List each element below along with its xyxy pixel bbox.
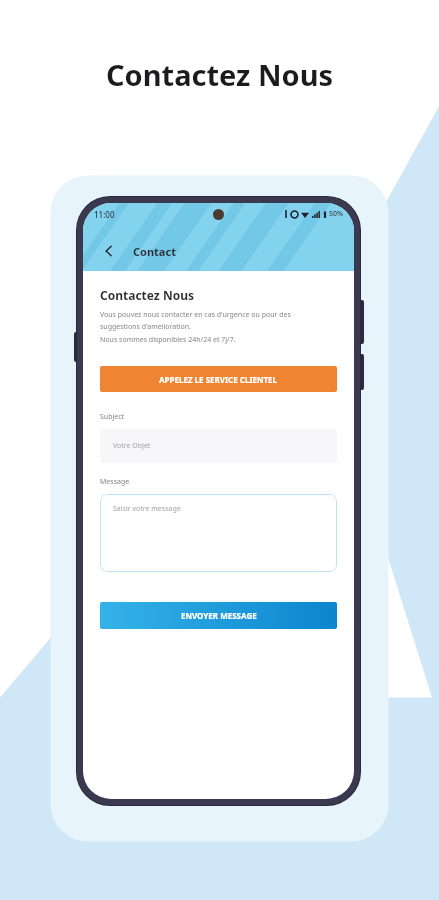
- staticText: APPELEZ LE SERVICE CLIENTEL: [159, 374, 278, 385]
- button[interactable]: APPELEZ LE SERVICE CLIENTEL: [100, 366, 337, 392]
- button[interactable]: ENVOYER MESSAGE: [100, 602, 337, 629]
- staticText: Subject: [100, 412, 125, 422]
- staticText: Saisir votre message: [113, 504, 181, 514]
- staticText: Contact: [133, 244, 176, 259]
- staticText: Message: [100, 477, 130, 487]
- button[interactable]: Back: [95, 237, 123, 265]
- staticText: Nous sommes disponibles 24h/24 et 7j/7.: [100, 335, 236, 345]
- staticText: Votre Objet: [113, 441, 151, 451]
- staticText: 11:00: [94, 209, 115, 220]
- staticText: Contactez Nous: [100, 287, 194, 303]
- staticText: 50%: [329, 209, 343, 219]
- staticText: ENVOYER MESSAGE: [181, 610, 257, 621]
- button[interactable]: Saisir votre message: [100, 494, 337, 572]
- button[interactable]: Votre Objet: [100, 429, 337, 463]
- staticText: Vous pouvez nous contacter en cas d'urge…: [100, 310, 291, 331]
- staticText: Contactez Nous: [0, 55, 439, 94]
